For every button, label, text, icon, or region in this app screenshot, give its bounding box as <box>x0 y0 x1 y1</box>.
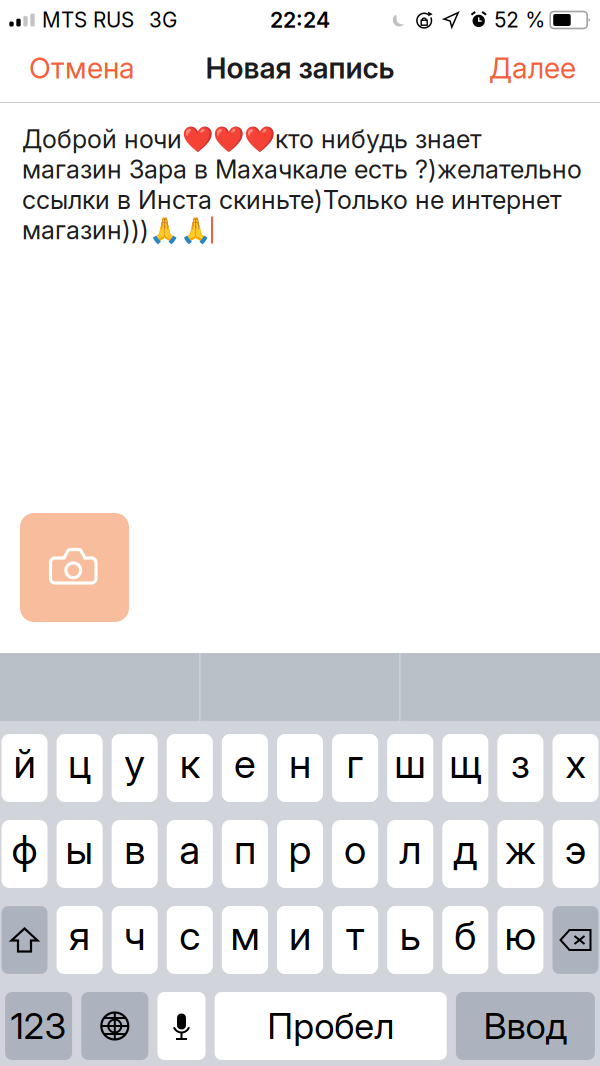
button[interactable]: т <box>332 906 378 974</box>
button[interactable]: ы <box>57 820 103 888</box>
button[interactable]: ь <box>387 906 433 974</box>
staticText: т <box>346 911 364 960</box>
button[interactable]: Отмена <box>0 40 153 102</box>
button[interactable]: б <box>442 906 488 974</box>
staticText: Доброй ночи❤️❤️❤️кто нибудь знает <box>22 124 482 154</box>
button[interactable]: п <box>222 820 268 888</box>
button[interactable]: й <box>1 734 47 802</box>
button[interactable]: з <box>497 734 543 802</box>
staticText: э <box>565 825 586 874</box>
staticText: Новая запись <box>205 51 394 85</box>
staticText: ф <box>11 825 37 874</box>
staticText: ж <box>505 825 536 874</box>
button[interactable]: и <box>277 906 323 974</box>
staticText: ь <box>400 911 421 960</box>
staticText: Ввод <box>483 1004 567 1048</box>
staticText: Отмена <box>29 51 135 85</box>
staticText: м <box>230 911 259 960</box>
button[interactable]: е <box>222 734 268 802</box>
button[interactable]: я <box>57 906 103 974</box>
button[interactable]: Ввод <box>456 992 595 1060</box>
staticText: 52 % <box>494 7 545 32</box>
button[interactable]: щ <box>442 734 488 802</box>
staticText: и <box>289 911 311 960</box>
staticText: о <box>344 825 366 874</box>
staticText: Пробел <box>267 1004 394 1048</box>
button[interactable]: ш <box>387 734 433 802</box>
staticText: х <box>565 739 585 788</box>
button[interactable]: ж <box>497 820 543 888</box>
button[interactable]: в <box>112 820 158 888</box>
staticText: а <box>179 825 200 874</box>
button[interactable]: л <box>387 820 433 888</box>
button[interactable]: х <box>552 734 598 802</box>
button[interactable]: с <box>167 906 213 974</box>
button[interactable]: 123 <box>5 992 72 1060</box>
staticText: в <box>124 825 145 874</box>
staticText: п <box>234 825 256 874</box>
button[interactable]: ч <box>112 906 158 974</box>
button[interactable]: к <box>167 734 213 802</box>
staticText: ю <box>504 911 536 960</box>
staticText: 123 <box>11 1004 67 1048</box>
staticText: магазин)))🙏🙏 <box>22 215 211 245</box>
button[interactable]: Add photo <box>20 513 129 622</box>
staticText: б <box>454 911 476 960</box>
staticText: магазин Зара в Махачкале есть ?)желатель… <box>22 154 582 185</box>
button[interactable]: ф <box>1 820 47 888</box>
staticText: ссылки в Инста скиньте)Только не интерне… <box>22 184 562 215</box>
button[interactable]: р <box>277 820 323 888</box>
button[interactable]: э <box>552 820 598 888</box>
staticText: ш <box>394 739 426 788</box>
staticText: 3G <box>149 7 177 32</box>
button[interactable]: Далее <box>471 40 600 102</box>
staticText: с <box>179 911 200 960</box>
staticText: щ <box>449 739 481 788</box>
button[interactable]: н <box>277 734 323 802</box>
button[interactable]: а <box>167 820 213 888</box>
staticText: ч <box>124 911 146 960</box>
staticText: р <box>288 825 311 874</box>
staticText: ы <box>66 825 94 874</box>
button[interactable]: г <box>332 734 378 802</box>
button[interactable]: д <box>442 820 488 888</box>
staticText: й <box>13 739 35 788</box>
staticText: Далее <box>489 51 576 85</box>
button[interactable]: ц <box>57 734 103 802</box>
staticText: г <box>347 739 364 788</box>
button[interactable]: о <box>332 820 378 888</box>
staticText: я <box>69 911 90 960</box>
button[interactable]: Shift <box>1 906 47 974</box>
button[interactable]: Dictate <box>157 992 205 1060</box>
button[interactable]: м <box>222 906 268 974</box>
button[interactable]: Пробел <box>215 992 447 1060</box>
staticText: 22:24 <box>270 7 330 33</box>
button[interactable]: Next keyboard <box>81 992 148 1060</box>
staticText: з <box>511 739 530 788</box>
button[interactable]: Delete <box>552 906 598 974</box>
staticText: д <box>453 825 477 874</box>
button[interactable]: у <box>112 734 158 802</box>
staticText: ц <box>68 739 91 788</box>
staticText: MTS RUS <box>42 7 134 32</box>
staticText: н <box>289 739 311 788</box>
staticText: л <box>399 825 421 874</box>
staticText: к <box>180 739 200 788</box>
staticText: е <box>234 739 256 788</box>
staticText: у <box>124 739 145 788</box>
button[interactable]: ю <box>497 906 543 974</box>
